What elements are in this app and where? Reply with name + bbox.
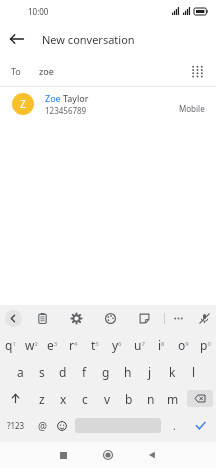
button[interactable]: Themes <box>99 307 121 329</box>
staticText: z <box>39 391 45 407</box>
staticText: y6 <box>112 337 122 353</box>
staticText: h <box>124 364 132 380</box>
button[interactable]: q1 <box>0 331 21 358</box>
button[interactable]: t5 <box>84 331 106 358</box>
staticText: i8 <box>158 337 165 353</box>
staticText: ?123 <box>7 420 25 431</box>
staticText: l <box>192 364 196 380</box>
button[interactable]: Backspace <box>187 390 213 407</box>
button[interactable]: Close toolbar <box>5 310 22 327</box>
button[interactable]: x <box>52 385 74 412</box>
staticText: e3 <box>47 337 58 353</box>
button[interactable]: Back <box>143 446 161 464</box>
button[interactable]: Recent apps <box>54 446 72 464</box>
button[interactable]: n <box>140 385 162 412</box>
staticText: 10:00 <box>28 6 49 17</box>
button[interactable]: g <box>95 358 117 385</box>
staticText: o9 <box>178 337 189 353</box>
staticText: Z <box>20 97 26 111</box>
button[interactable]: More options <box>167 307 189 329</box>
staticText: zoe <box>39 65 54 77</box>
staticText: Mobile <box>179 103 205 114</box>
staticText: t5 <box>91 337 99 353</box>
button[interactable]: s <box>31 358 52 385</box>
button[interactable]: Emoji <box>52 412 72 439</box>
staticText: g <box>102 364 110 380</box>
button[interactable]: b <box>118 385 140 412</box>
staticText: w2 <box>25 337 38 353</box>
button[interactable]: y6 <box>106 331 128 358</box>
staticText: To <box>11 65 21 77</box>
staticText: q1 <box>5 337 16 353</box>
staticText: New conversation <box>42 32 135 47</box>
button[interactable]: p0 <box>194 331 216 358</box>
button[interactable]: To <box>0 56 216 86</box>
button[interactable]: v <box>96 385 118 412</box>
staticText: 123456789 <box>45 105 87 116</box>
button[interactable]: l <box>183 358 205 385</box>
staticText: n <box>147 391 155 407</box>
button[interactable]: @ <box>32 412 52 439</box>
button[interactable]: a <box>10 358 31 385</box>
button[interactable]: h <box>117 358 139 385</box>
button[interactable]: z <box>31 385 52 412</box>
staticText: j <box>148 364 152 380</box>
button[interactable]: Clipboard <box>31 307 53 329</box>
staticText: a <box>17 364 24 380</box>
staticText: . <box>173 419 176 433</box>
staticText: x <box>60 391 67 407</box>
button[interactable]: j <box>139 358 161 385</box>
button[interactable]: i8 <box>150 331 172 358</box>
button[interactable]: Stickers <box>133 307 155 329</box>
staticText: v <box>104 391 111 407</box>
staticText: c <box>82 391 88 407</box>
button[interactable]: m <box>162 385 184 412</box>
staticText: b <box>125 391 133 407</box>
staticText: @ <box>38 419 47 433</box>
button[interactable]: u7 <box>128 331 150 358</box>
button[interactable]: d <box>52 358 73 385</box>
staticText: d <box>59 364 67 380</box>
staticText: f <box>82 364 87 380</box>
button[interactable]: Send <box>184 412 216 439</box>
button[interactable]: Settings <box>65 307 87 329</box>
button[interactable]: w2 <box>21 331 42 358</box>
button[interactable]: Back <box>0 22 34 56</box>
staticText: r4 <box>69 337 78 353</box>
staticText: k <box>169 364 176 380</box>
staticText: m <box>167 391 179 407</box>
button[interactable]: e3 <box>42 331 63 358</box>
staticText: s <box>39 364 45 380</box>
button[interactable]: . <box>164 412 184 439</box>
button[interactable]: Home <box>99 446 117 464</box>
button[interactable]: c <box>74 385 96 412</box>
button[interactable]: k <box>161 358 183 385</box>
button[interactable]: Dialpad <box>182 56 212 86</box>
button[interactable]: r4 <box>63 331 84 358</box>
button[interactable]: ?123 <box>0 412 32 439</box>
button[interactable]: f <box>73 358 95 385</box>
staticText: u7 <box>134 337 145 353</box>
button[interactable]: Voice input off <box>193 307 215 329</box>
staticText: p0 <box>200 337 211 353</box>
button[interactable]: Z <box>0 87 216 120</box>
button[interactable]: Shift <box>0 385 31 412</box>
staticText: Zoe Taylor <box>45 92 89 104</box>
button[interactable]: o9 <box>172 331 194 358</box>
